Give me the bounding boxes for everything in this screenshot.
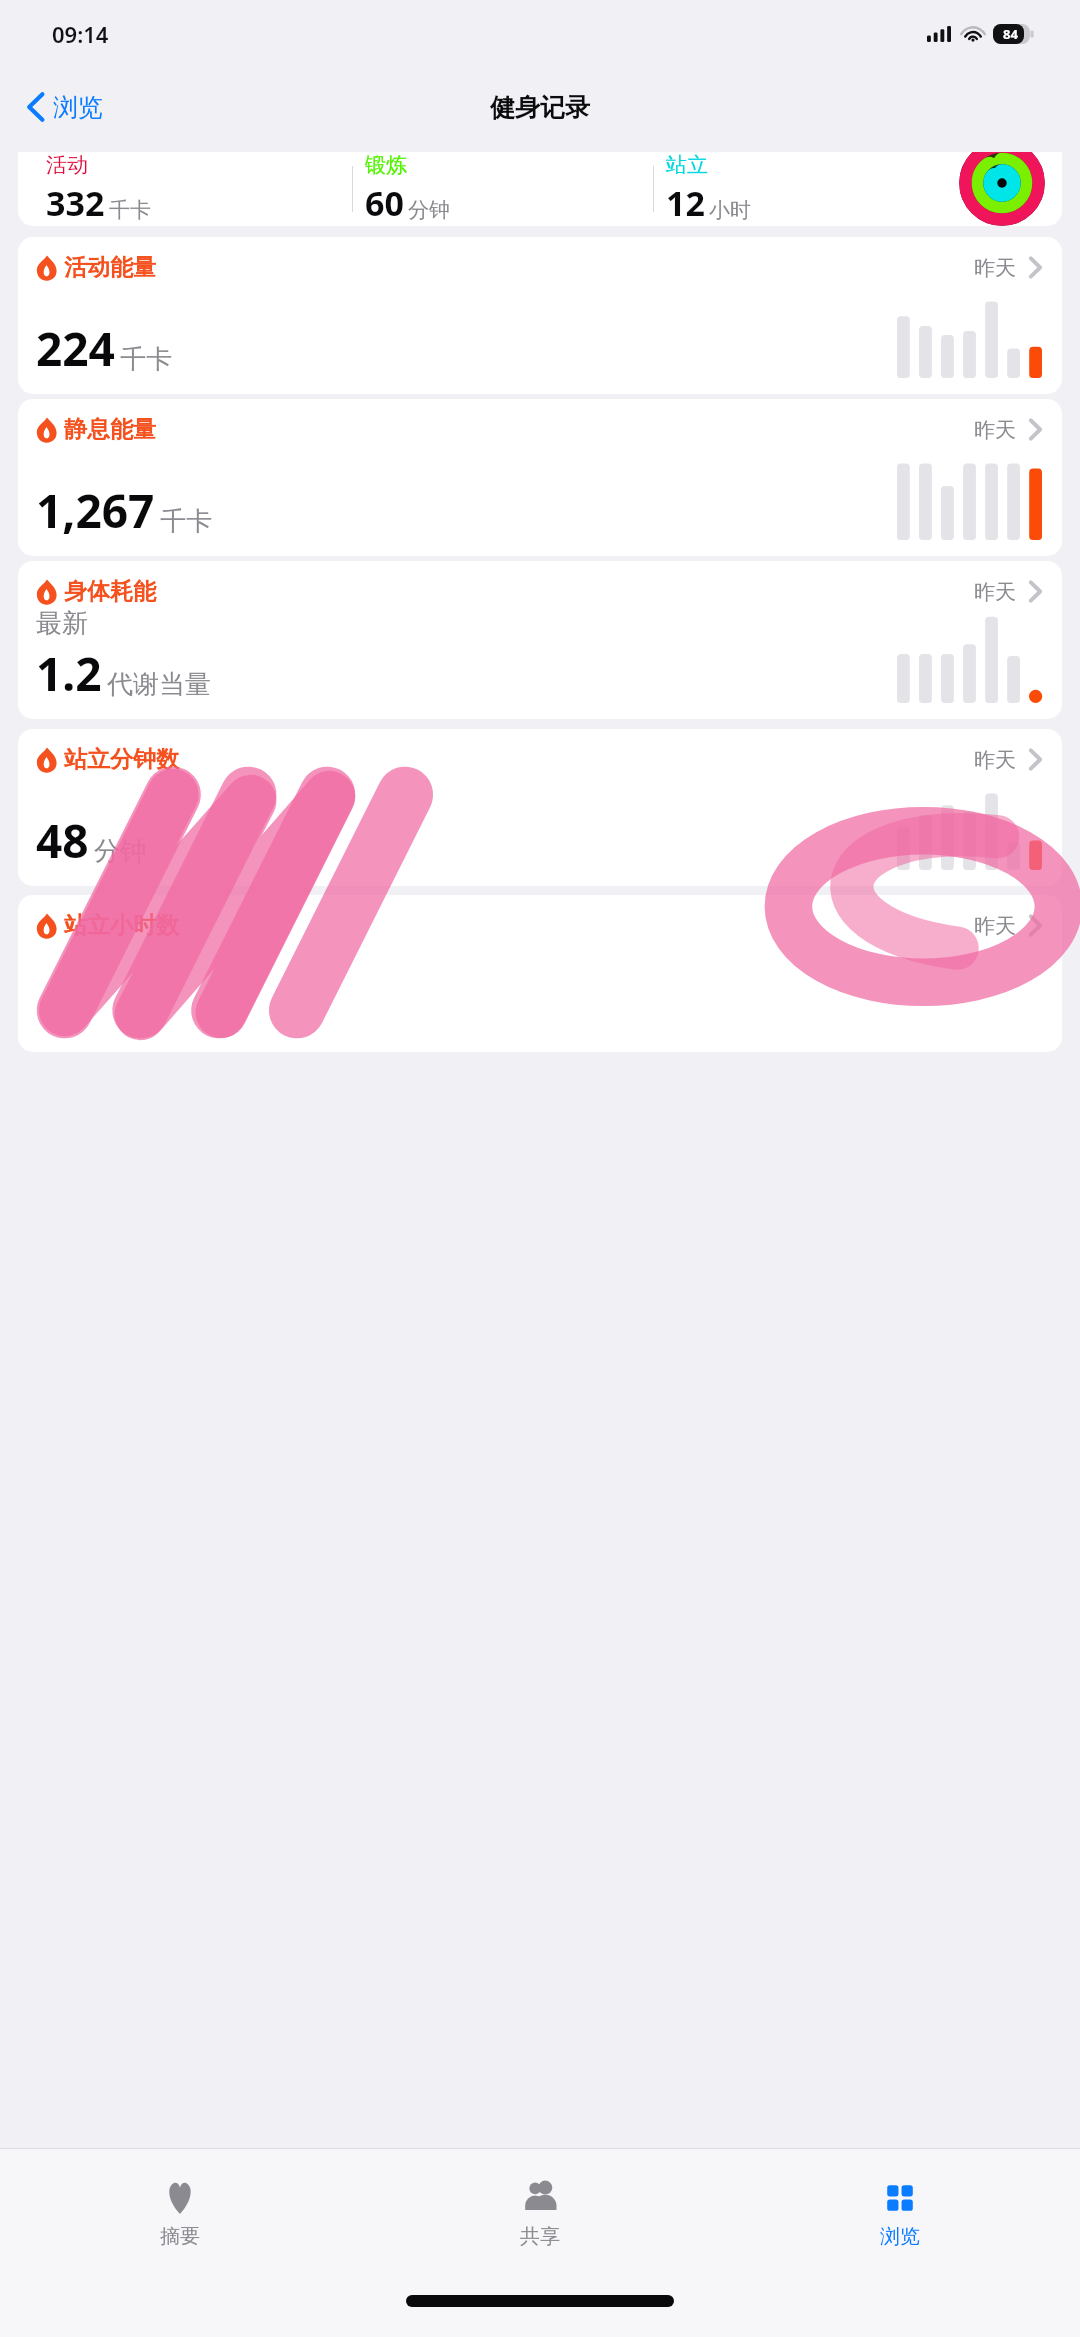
staticText: 站立小时数	[64, 911, 179, 940]
staticText: 1.2	[36, 642, 102, 705]
staticText: 活动	[46, 152, 88, 178]
staticText: 小时	[709, 197, 751, 223]
button[interactable]: 浏览	[720, 2149, 1080, 2277]
staticText: 昨天	[974, 417, 1016, 443]
button[interactable]: 摘要	[0, 2149, 360, 2277]
staticText: 48	[36, 809, 89, 872]
staticText: 站立分钟数	[64, 745, 179, 774]
staticText: 09:14	[52, 19, 109, 49]
staticText: 最新	[36, 607, 88, 640]
staticText: 浏览	[880, 2224, 920, 2249]
staticText: 332	[46, 180, 105, 226]
staticText: 活动能量	[64, 253, 156, 282]
staticText: 千卡	[160, 505, 212, 538]
button[interactable]: 身体耗能	[18, 561, 1062, 719]
staticText: 分钟	[408, 197, 450, 223]
staticText: 千卡	[109, 197, 151, 223]
button[interactable]: 静息能量	[18, 399, 1062, 556]
button[interactable]: 浏览	[20, 85, 109, 129]
staticText: 锻炼	[365, 152, 407, 178]
staticText: 1,267	[36, 479, 155, 542]
staticText: 身体耗能	[64, 577, 156, 606]
staticText: 分钟	[94, 835, 146, 868]
staticText: 昨天	[974, 913, 1016, 939]
button[interactable]: 活动	[18, 152, 1062, 226]
staticText: 千卡	[120, 343, 172, 376]
staticText: 昨天	[974, 747, 1016, 773]
staticText: 12	[666, 180, 705, 226]
staticText: 静息能量	[64, 415, 156, 444]
staticText: 60	[365, 180, 404, 226]
button[interactable]: 共享	[360, 2149, 720, 2277]
button[interactable]: 站立小时数	[18, 895, 1062, 1052]
staticText: 摘要	[160, 2224, 200, 2249]
button[interactable]: 活动能量	[18, 237, 1062, 394]
staticText: 健身记录	[490, 92, 590, 123]
staticText: 224	[36, 317, 115, 380]
staticText: 站立	[666, 152, 708, 178]
staticText: 浏览	[53, 92, 103, 123]
staticText: 共享	[520, 2224, 560, 2249]
staticText: 84	[1003, 25, 1018, 43]
staticText: 代谢当量	[107, 668, 211, 701]
staticText: 昨天	[974, 255, 1016, 281]
staticText: 昨天	[974, 579, 1016, 605]
button[interactable]: 站立分钟数	[18, 729, 1062, 886]
